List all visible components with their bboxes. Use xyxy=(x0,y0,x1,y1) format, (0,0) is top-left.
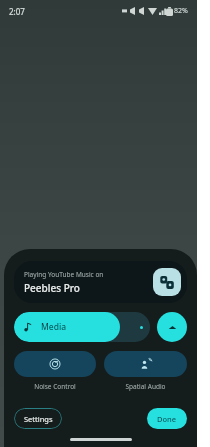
button[interactable]: Done xyxy=(147,408,187,429)
button[interactable]: Noise Control xyxy=(14,351,96,377)
staticText: Media xyxy=(41,321,67,333)
button[interactable]: Media xyxy=(14,312,150,342)
staticText: Settings xyxy=(24,414,53,424)
button[interactable]: Settings xyxy=(14,408,62,429)
button[interactable]: Playing YouTube Music on xyxy=(14,261,187,303)
button[interactable]: Earbuds xyxy=(153,268,181,296)
staticText: Peebles Pro xyxy=(24,281,80,295)
staticText: Spatial Audio xyxy=(125,382,166,391)
button[interactable]: Spatial Audio xyxy=(104,351,187,377)
staticText: Done xyxy=(157,414,177,424)
staticText: Playing YouTube Music on xyxy=(24,270,104,279)
button[interactable]: Expand xyxy=(157,312,187,342)
staticText: 2:07 xyxy=(9,6,25,17)
staticText: Noise Control xyxy=(34,382,76,391)
staticText: 82% xyxy=(174,6,188,16)
